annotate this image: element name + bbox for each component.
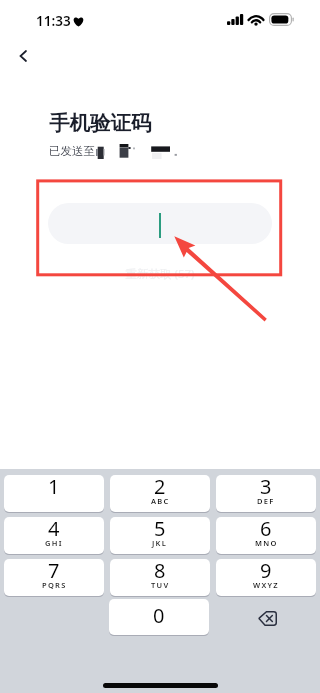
staticText: JKL (152, 538, 168, 548)
staticText: WXYZ (253, 580, 279, 590)
button[interactable]: 4 (4, 517, 104, 554)
button[interactable]: 9 (216, 559, 316, 596)
button[interactable]: 7 (4, 559, 104, 596)
staticText: 2 (154, 475, 166, 500)
button[interactable]: Delete (215, 599, 315, 635)
staticText: 0 (153, 602, 165, 629)
staticText: MNO (255, 538, 278, 548)
staticText: GHI (45, 538, 63, 548)
staticText: 9 (260, 559, 272, 584)
button[interactable]: 2 (110, 475, 210, 512)
staticText: 6 (260, 517, 272, 542)
staticText: 5 (154, 517, 166, 542)
button[interactable]: 8 (110, 559, 210, 596)
staticText: TUV (151, 580, 170, 590)
staticText: PQRS (42, 580, 67, 590)
button[interactable]: 0 (109, 599, 209, 635)
button[interactable]: 1 (4, 475, 104, 512)
staticText: DEF (257, 496, 275, 506)
staticText: 4 (48, 517, 60, 542)
staticText: 手机验证码 (49, 110, 152, 136)
staticText: 8 (154, 559, 166, 584)
button[interactable]: 5 (110, 517, 210, 554)
staticText: 重新获取 (57) (0, 266, 320, 282)
staticText: 7 (48, 559, 60, 584)
staticText: 3 (260, 475, 272, 500)
button[interactable]: 3 (216, 475, 316, 512)
staticText: 11:33 (36, 12, 71, 30)
button[interactable]: Back (8, 41, 38, 71)
staticText: 已发送至 (49, 144, 95, 158)
button[interactable]: 6 (216, 517, 316, 554)
staticText: 1 (48, 475, 60, 500)
staticText: ABC (151, 496, 170, 506)
button[interactable] (48, 203, 272, 244)
